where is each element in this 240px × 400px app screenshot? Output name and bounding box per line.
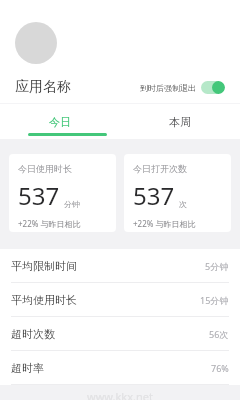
staticText: 今日打开次数	[133, 163, 187, 174]
staticText: 超时次数	[11, 327, 55, 341]
button[interactable]: App icon	[15, 22, 57, 64]
staticText: 应用名称	[15, 78, 71, 96]
staticText: 到时后强制退出	[140, 83, 196, 93]
staticText: 平均使用时长	[11, 293, 77, 307]
staticText: +22% 与昨日相比	[133, 218, 196, 229]
button[interactable]: 到时后强制退出	[140, 81, 225, 94]
staticText: 今日	[49, 115, 71, 129]
staticText: 537	[18, 179, 60, 212]
button[interactable]: 今日打开次数	[124, 154, 231, 232]
staticText: 本周	[169, 115, 191, 129]
staticText: 5分钟	[205, 260, 229, 272]
button[interactable]: 超时率	[0, 351, 240, 384]
button[interactable]: 今日	[0, 104, 120, 139]
staticText: 次	[179, 199, 187, 209]
staticText: 76%	[211, 362, 229, 374]
staticText: 分钟	[64, 199, 80, 209]
staticText: 15分钟	[200, 294, 229, 306]
button[interactable]: 本周	[120, 104, 240, 139]
staticText: 537	[133, 179, 175, 212]
button[interactable]: 今日使用时长	[9, 154, 116, 232]
staticText: 超时率	[11, 361, 44, 375]
staticText: 56次	[209, 328, 229, 340]
button[interactable]: 平均使用时长	[0, 283, 240, 316]
staticText: www.kkx.net	[87, 389, 153, 400]
staticText: +22% 与昨日相比	[18, 218, 81, 229]
staticText: 今日使用时长	[18, 163, 72, 174]
button[interactable]: 超时次数	[0, 317, 240, 350]
button[interactable]: 平均限制时间	[0, 249, 240, 282]
staticText: 平均限制时间	[11, 259, 77, 273]
